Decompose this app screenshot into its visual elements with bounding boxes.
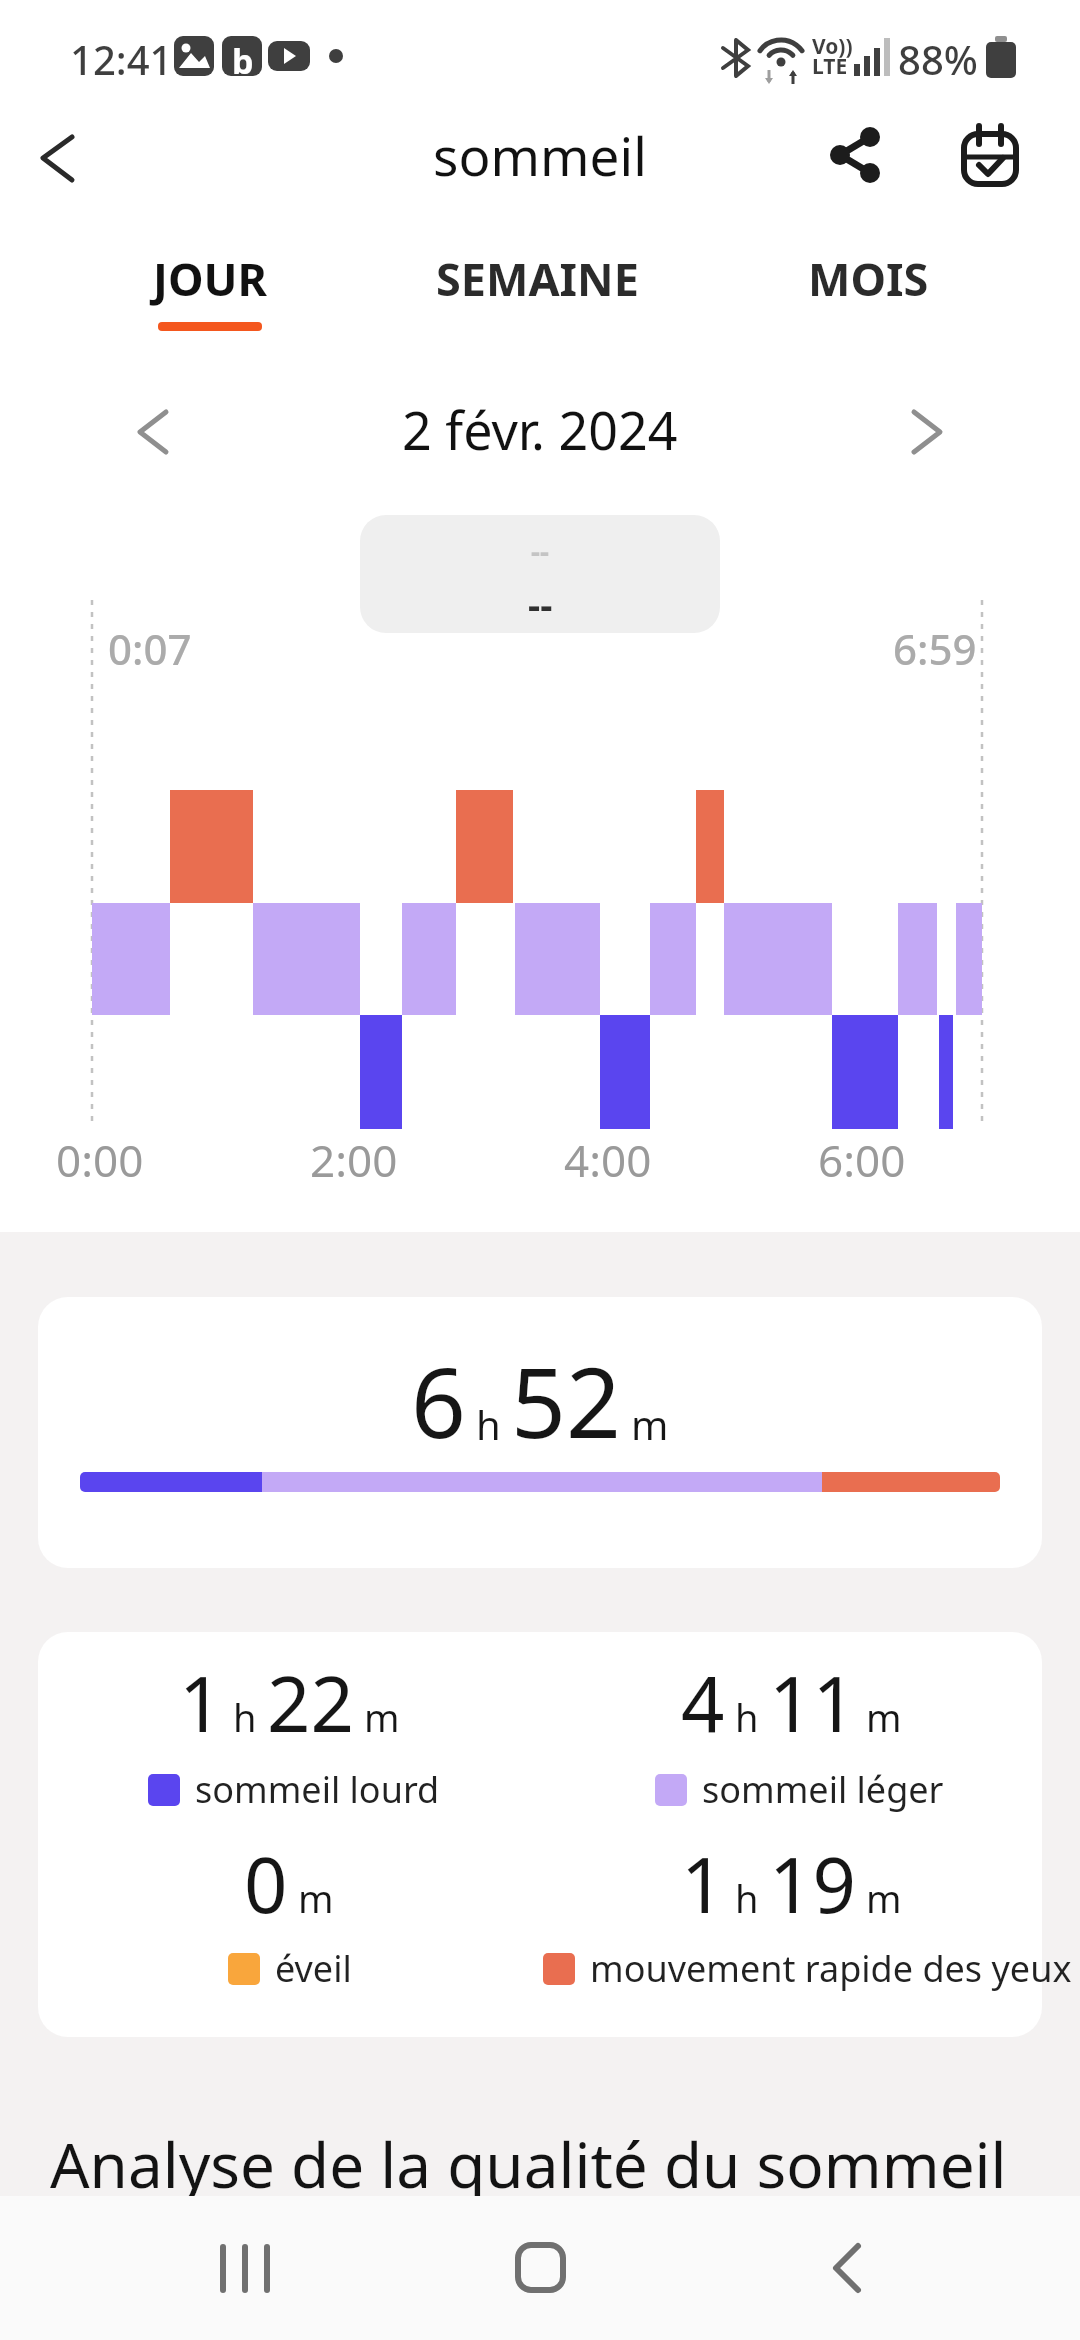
staticText: 6:59 xyxy=(893,620,977,677)
staticText: sommeil léger xyxy=(702,1765,944,1814)
button[interactable]: MOIS xyxy=(798,245,938,340)
staticText: SEMAINE xyxy=(436,248,639,309)
staticText: h xyxy=(476,1397,501,1451)
staticText: 11 xyxy=(769,1651,856,1755)
staticText: 4:00 xyxy=(564,1130,652,1190)
staticText: 2:00 xyxy=(310,1130,398,1190)
staticText: b xyxy=(232,38,254,84)
button[interactable] xyxy=(952,114,1028,194)
staticText: JOUR xyxy=(153,248,268,309)
button[interactable] xyxy=(38,1632,1042,2037)
button[interactable] xyxy=(20,125,90,195)
staticText: 0 xyxy=(244,1832,288,1936)
staticText: m xyxy=(866,1691,902,1743)
staticText: 12:41 xyxy=(70,32,173,86)
staticText: 22 xyxy=(267,1651,354,1755)
staticText: sommeil xyxy=(433,119,647,191)
button[interactable]: JOUR xyxy=(140,245,280,340)
staticText: 52 xyxy=(511,1335,621,1466)
staticText: 6 xyxy=(411,1335,466,1466)
staticText: 1 xyxy=(681,1832,725,1936)
staticText: -- xyxy=(531,532,549,570)
staticText: h xyxy=(233,1691,257,1743)
staticText: -- xyxy=(528,578,553,630)
button[interactable] xyxy=(820,118,896,194)
staticText: 88% xyxy=(898,32,978,86)
button[interactable] xyxy=(485,2216,595,2320)
staticText: m xyxy=(866,1872,902,1924)
button[interactable] xyxy=(790,2216,900,2320)
staticText: LTE xyxy=(812,52,848,81)
staticText: 2 févr. 2024 xyxy=(402,394,678,465)
staticText: h xyxy=(735,1691,759,1743)
staticText: 19 xyxy=(769,1832,856,1936)
button[interactable] xyxy=(38,1297,1042,1568)
staticText: h xyxy=(735,1872,759,1924)
button[interactable]: SEMAINE xyxy=(407,245,667,340)
staticText: MOIS xyxy=(808,248,929,309)
button[interactable] xyxy=(890,395,970,475)
staticText: 4 xyxy=(681,1651,725,1755)
staticText: Vo)) xyxy=(812,32,853,61)
button[interactable] xyxy=(110,395,190,475)
staticText: Analyse de la qualité du sommeil xyxy=(50,2122,1007,2206)
staticText: 0:07 xyxy=(108,620,192,677)
staticText: m xyxy=(298,1872,334,1924)
staticText: m xyxy=(364,1691,400,1743)
staticText: 6:00 xyxy=(818,1130,906,1190)
staticText: 0:00 xyxy=(56,1130,144,1190)
staticText: mouvement rapide des yeux xyxy=(590,1944,1072,1993)
staticText: m xyxy=(631,1397,669,1451)
staticText: 1 xyxy=(179,1651,223,1755)
staticText: éveil xyxy=(275,1944,352,1993)
button[interactable] xyxy=(190,2216,300,2320)
staticText: sommeil lourd xyxy=(195,1765,440,1814)
